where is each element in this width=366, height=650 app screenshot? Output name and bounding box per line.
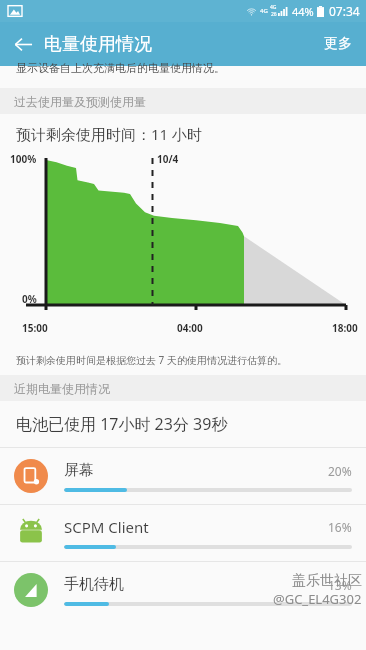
staticText: 18:00 (332, 321, 358, 335)
button[interactable]: 屏幕 (0, 448, 366, 504)
staticText: 过去使用量及预测使用量 (14, 94, 146, 109)
staticText: 显示设备自上次充满电后的电量使用情况。 (16, 61, 225, 75)
staticText: 预计剩余使用时间：11 小时 (16, 124, 203, 144)
staticText: 近期电量使用情况 (14, 381, 110, 396)
staticText: 10/4 (157, 152, 179, 166)
staticText: 4G (270, 4, 277, 11)
staticText: 4G (260, 7, 268, 15)
staticText: 盖乐世社区 (292, 572, 362, 590)
staticText: 手机待机 (64, 575, 328, 594)
staticText: 26 (271, 11, 277, 18)
button[interactable]: Back (6, 27, 40, 61)
staticText: 更多 (324, 35, 352, 53)
staticText: 07:34 (329, 3, 360, 19)
staticText: 100% (10, 152, 37, 166)
staticText: 预计剩余使用时间是根据您过去 7 天的使用情况进行估算的。 (16, 353, 287, 367)
staticText: 15:00 (22, 321, 48, 335)
staticText: SCPM Client (64, 517, 328, 537)
staticText: @GC_EL4G302 (273, 590, 362, 608)
staticText: 电池已使用 17小时 23分 39秒 (16, 413, 228, 435)
button[interactable]: 更多 (310, 25, 366, 63)
staticText: 04:00 (177, 321, 203, 335)
staticText: 屏幕 (64, 461, 328, 480)
staticText: 20% (328, 463, 352, 479)
button[interactable]: SCPM Client (0, 505, 366, 561)
staticText: 13% (328, 577, 352, 593)
button[interactable]: 手机待机 (0, 562, 366, 618)
staticText: 0% (22, 292, 37, 306)
staticText: 44% (292, 4, 314, 19)
staticText: 电量使用情况 (44, 33, 152, 56)
staticText: 16% (328, 519, 352, 535)
